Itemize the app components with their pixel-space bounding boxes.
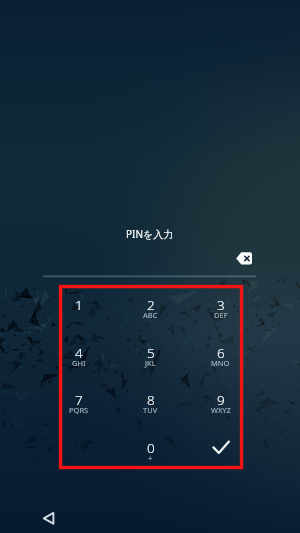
button[interactable]: 4 [43,328,114,375]
staticText: 4 [75,344,83,362]
staticText: 6 [217,344,225,362]
staticText: 5 [147,344,155,362]
staticText: JKL [145,358,156,368]
button[interactable]: 2 [115,280,186,327]
staticText: TUV [143,405,158,415]
staticText: 7 [75,391,83,409]
button[interactable]: 1 [43,280,114,327]
staticText: + [148,453,153,463]
staticText: 2 [147,296,155,314]
button[interactable]: 3 [185,280,256,327]
button[interactable]: 6 [185,328,256,375]
button[interactable]: Enter [185,423,256,470]
staticText: 0 [147,439,155,457]
staticText: PINを入力 [126,227,174,241]
staticText: WXYZ [211,405,231,415]
staticText: ABC [143,310,158,320]
staticText: MNO [211,358,230,368]
staticText: PQRS [69,405,89,415]
button[interactable]: 9 [185,375,256,422]
staticText: 3 [217,296,225,314]
button[interactable]: 0 [115,423,186,470]
button[interactable]: 7 [43,375,114,422]
staticText: GHI [72,358,86,368]
staticText: DEF [214,310,228,320]
staticText: 9 [217,391,225,409]
button[interactable]: 8 [115,375,186,422]
button[interactable]: Back [34,503,64,533]
staticText: 8 [147,391,155,409]
button[interactable]: Delete [229,245,259,272]
button[interactable]: 5 [115,328,186,375]
staticText: 1 [75,296,83,314]
